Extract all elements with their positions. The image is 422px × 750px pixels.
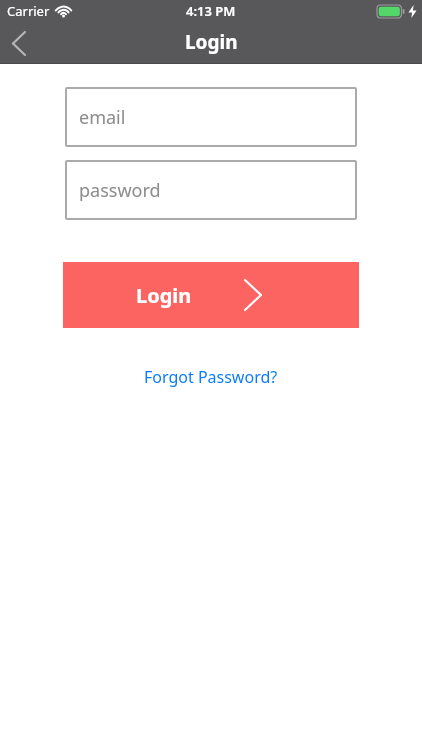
- staticText: password: [79, 178, 161, 203]
- button[interactable]: password: [65, 160, 357, 220]
- staticText: Forgot Password?: [144, 366, 278, 388]
- staticText: 4:13 PM: [186, 2, 236, 20]
- button[interactable]: Forgot Password?: [144, 366, 278, 388]
- staticText: email: [79, 105, 126, 130]
- staticText: Login: [136, 282, 192, 309]
- button[interactable]: Login: [63, 262, 359, 328]
- button[interactable]: [2, 27, 34, 59]
- staticText: Login: [185, 29, 238, 55]
- button[interactable]: email: [65, 87, 357, 147]
- staticText: Carrier: [7, 2, 50, 20]
